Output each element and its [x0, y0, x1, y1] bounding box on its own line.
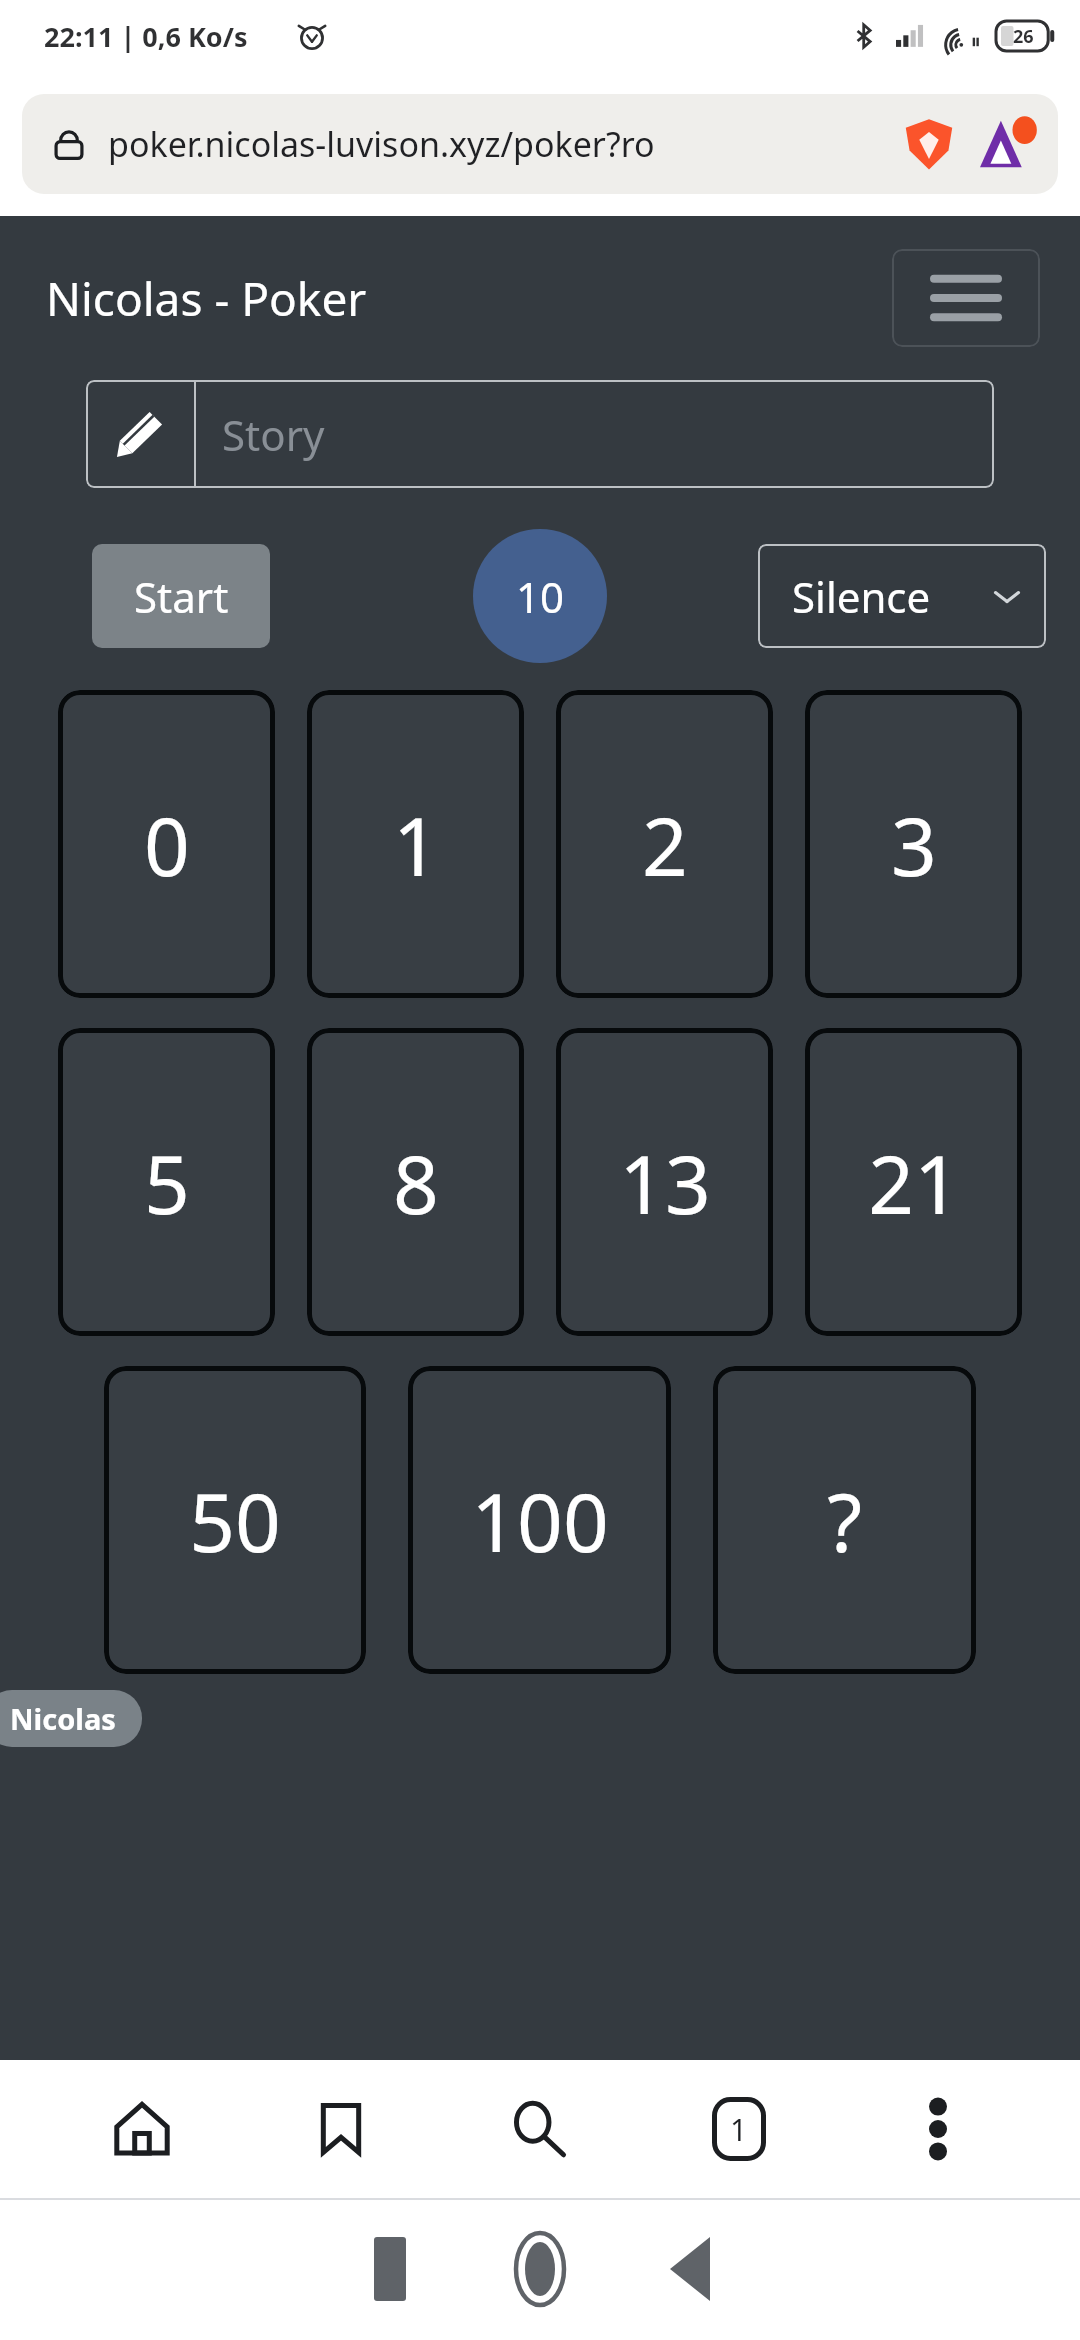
staticText: 1 [393, 790, 439, 899]
button[interactable]: 8 [307, 1028, 524, 1336]
button[interactable]: Start [92, 544, 270, 648]
other: Brave Shields [902, 117, 956, 171]
other: Profile [980, 115, 1038, 173]
button[interactable]: More options [881, 2072, 995, 2186]
other: Site info [50, 125, 88, 163]
button[interactable]: Menu [892, 249, 1040, 347]
button[interactable]: 10 [473, 529, 607, 663]
button[interactable]: Nicolas [0, 1690, 142, 1747]
button[interactable]: Recents [315, 2198, 465, 2340]
button[interactable]: Edit story [86, 380, 194, 488]
button[interactable]: Story [196, 380, 994, 488]
button[interactable]: Home [465, 2198, 615, 2340]
staticText: 10 [516, 568, 565, 625]
button[interactable]: 0 [58, 690, 275, 998]
staticText: poker.nicolas-luvison.xyz/poker?ro [108, 121, 896, 167]
staticText: 3 [891, 790, 937, 899]
button[interactable]: 100 [408, 1366, 671, 1674]
button[interactable]: Silence [758, 544, 1046, 648]
staticText: 5 [144, 1128, 190, 1237]
staticText: Nicolas - Poker [46, 267, 892, 330]
staticText: 0 [144, 790, 190, 899]
button[interactable]: 13 [556, 1028, 773, 1336]
staticText: 22:11 | 0,6 Ko/s [44, 18, 248, 55]
button[interactable]: 50 [104, 1366, 366, 1674]
button[interactable]: 21 [805, 1028, 1022, 1336]
staticText: 8 [393, 1128, 439, 1237]
button[interactable]: Back [615, 2198, 765, 2340]
staticText: 1 [730, 2109, 748, 2150]
button[interactable]: ? [713, 1366, 976, 1674]
button[interactable]: 2 [556, 690, 773, 998]
button[interactable]: 5 [58, 1028, 275, 1336]
button[interactable]: Home [85, 2072, 199, 2186]
button[interactable]: Search [483, 2072, 597, 2186]
staticText: Nicolas [10, 1699, 116, 1738]
button[interactable]: Site info [22, 94, 1058, 194]
staticText: 13 [619, 1128, 711, 1237]
button[interactable]: Tabs [682, 2072, 796, 2186]
staticText: 2 [642, 790, 688, 899]
staticText: 21 [868, 1128, 960, 1237]
button[interactable]: Bookmarks [284, 2072, 398, 2186]
staticText: Start [134, 568, 229, 625]
button[interactable]: 3 [805, 690, 1022, 998]
staticText: Story [222, 406, 325, 463]
button[interactable]: 1 [307, 690, 524, 998]
staticText: Silence [792, 568, 990, 625]
staticText: 50 [189, 1466, 281, 1575]
staticText: 100 [471, 1466, 609, 1575]
staticText: 26 [1013, 24, 1034, 49]
staticText: ? [827, 1466, 862, 1575]
